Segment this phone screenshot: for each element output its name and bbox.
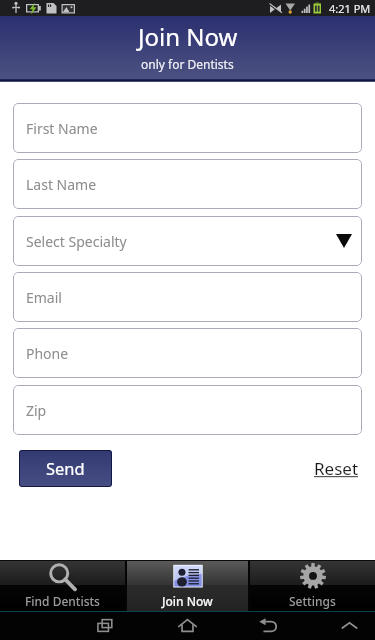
button[interactable]: Find Dentists: [0, 560, 125, 611]
staticText: Zip: [26, 401, 47, 420]
staticText: Join Now: [162, 593, 213, 609]
button[interactable]: Send: [19, 450, 112, 487]
button[interactable]: Email: [13, 272, 362, 322]
staticText: 4:21 PM: [329, 1, 371, 16]
staticText: Send: [46, 457, 85, 479]
button[interactable]: Recent apps: [64, 611, 146, 640]
staticText: only for Dentists: [141, 56, 234, 72]
staticText: Phone: [26, 344, 69, 363]
button[interactable]: Last Name: [13, 159, 362, 209]
button[interactable]: Home: [146, 611, 228, 640]
button[interactable]: Join Now: [125, 560, 250, 611]
button[interactable]: First Name: [13, 103, 362, 153]
staticText: Select Specialty: [26, 232, 127, 251]
staticText: Join Now: [138, 20, 238, 53]
staticText: Last Name: [26, 175, 97, 194]
button[interactable]: Back: [227, 611, 309, 640]
button[interactable]: Phone: [13, 328, 362, 378]
staticText: Reset: [314, 457, 359, 480]
staticText: Find Dentists: [25, 593, 100, 609]
button[interactable]: Hide navigation: [308, 611, 375, 640]
staticText: Settings: [289, 593, 336, 609]
button[interactable]: Reset: [314, 457, 359, 480]
button[interactable]: Settings: [250, 560, 375, 611]
button[interactable]: Zip: [13, 385, 362, 435]
staticText: First Name: [26, 119, 98, 138]
button[interactable]: Select Specialty: [13, 216, 362, 266]
staticText: Email: [26, 288, 62, 307]
